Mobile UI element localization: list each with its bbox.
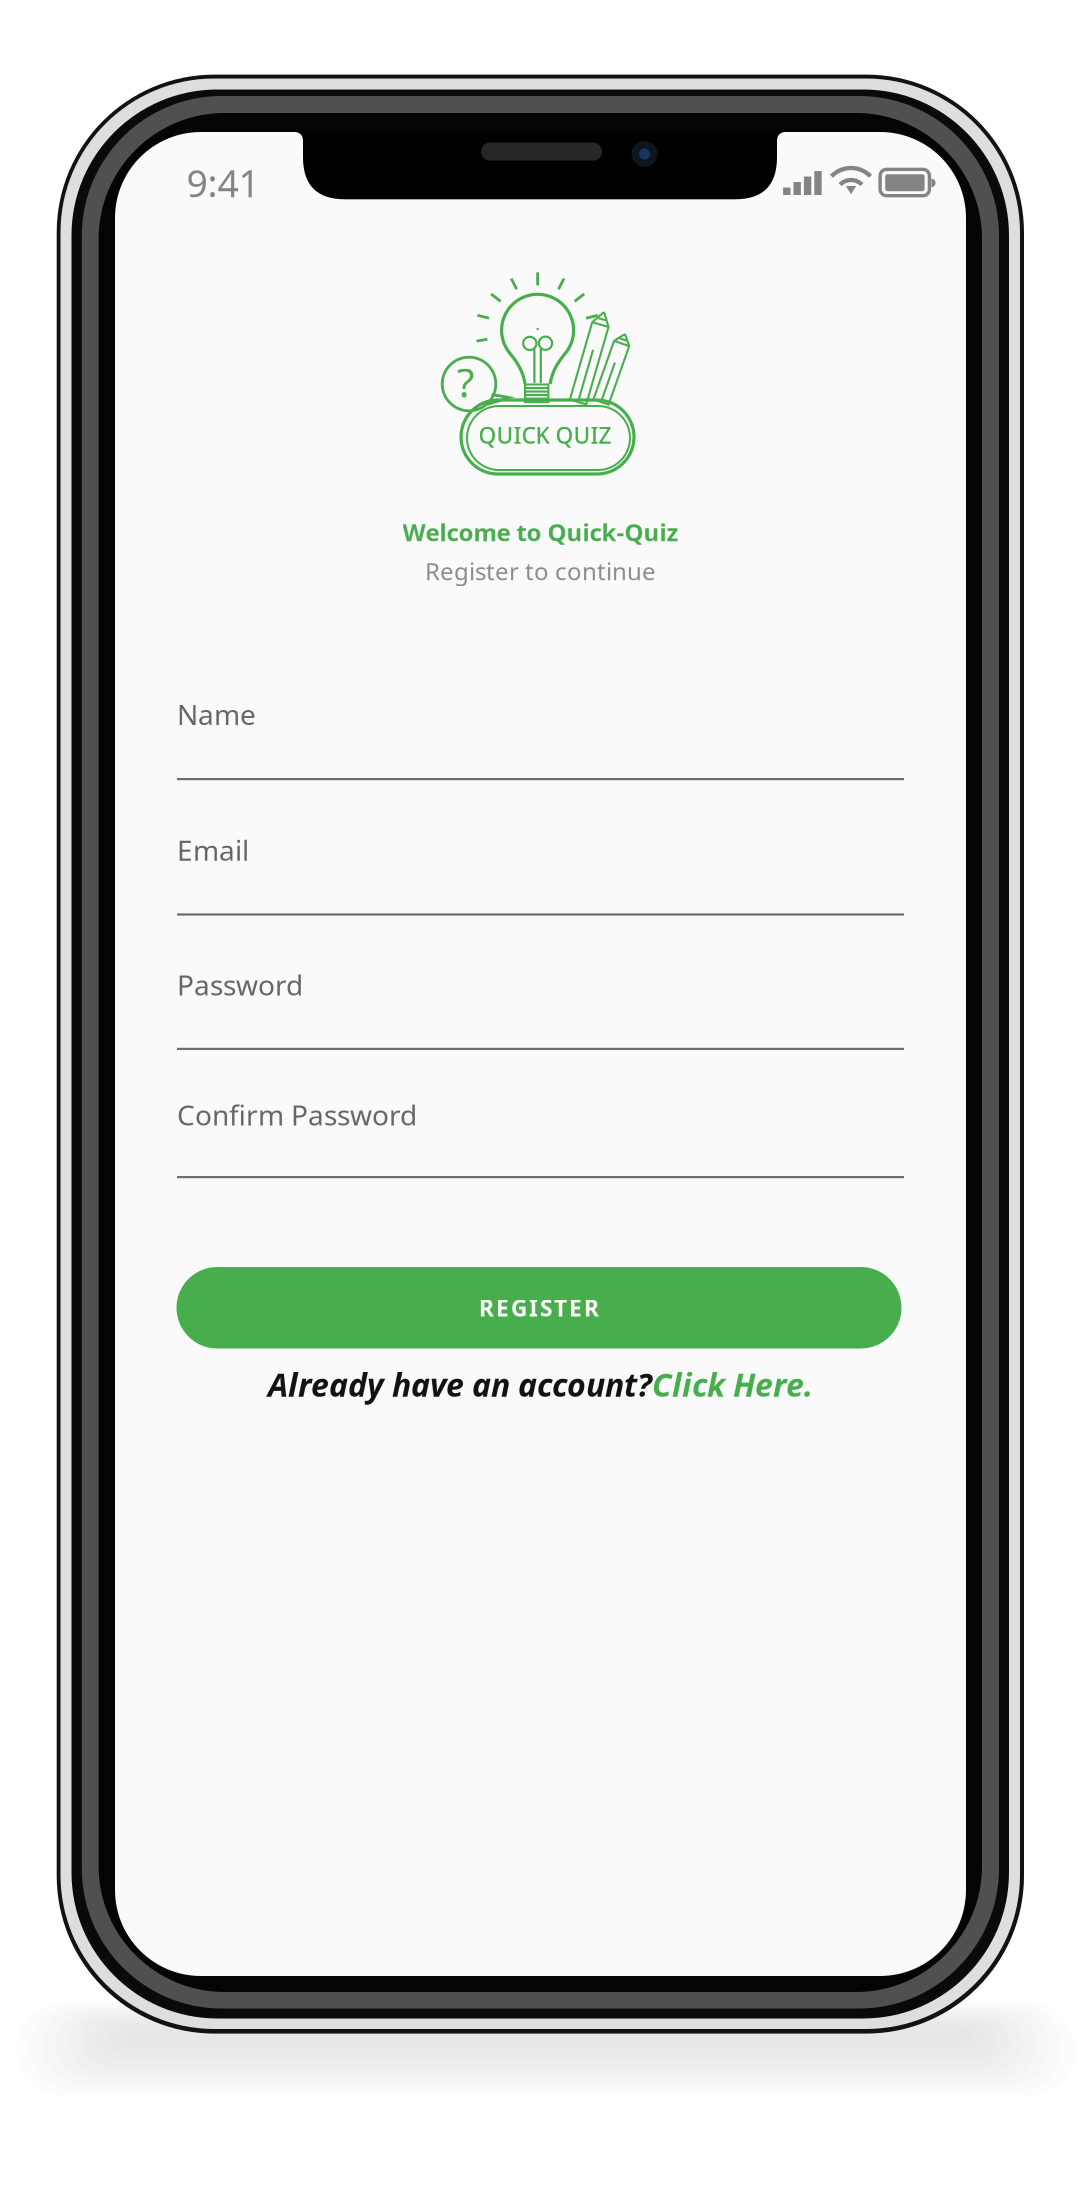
button[interactable]: Name — [177, 696, 904, 806]
staticText: Password — [177, 966, 303, 1003]
staticText: QUICK QUIZ — [478, 420, 611, 450]
button[interactable]: Confirm Password — [177, 1096, 904, 1206]
button[interactable]: Email — [177, 831, 904, 941]
staticText: Name — [177, 696, 256, 733]
button[interactable]: Already have an account? — [115, 1363, 966, 1405]
staticText: Welcome to Quick-Quiz — [402, 516, 678, 548]
staticText: Click Here. — [652, 1363, 813, 1405]
staticText: ? — [457, 355, 474, 408]
staticText: 9:41 — [186, 158, 259, 208]
staticText: Confirm Password — [177, 1096, 417, 1133]
staticText: Already have an account? — [268, 1363, 652, 1405]
staticText: Register to continue — [425, 555, 656, 587]
button[interactable]: REGISTER — [176, 1267, 901, 1348]
staticText: REGISTER — [479, 1293, 599, 1323]
staticText: Email — [177, 831, 249, 869]
button[interactable]: Password — [177, 966, 904, 1076]
